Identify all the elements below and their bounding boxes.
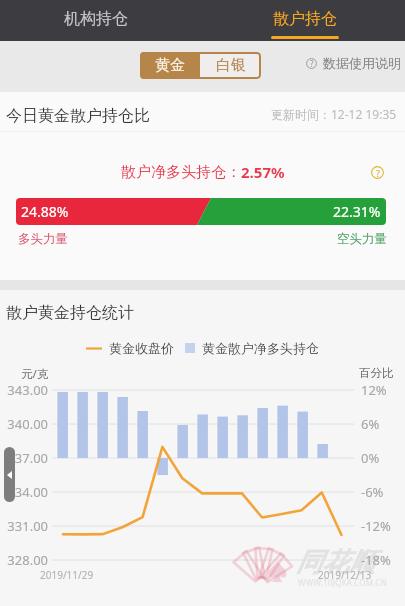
staticText: 更新时间：12-12 19:35	[271, 106, 397, 122]
staticText: 黄金收盘价	[109, 340, 174, 356]
staticText: -6%	[361, 483, 384, 501]
staticText: 6%	[361, 415, 380, 433]
staticText: 元/克	[21, 366, 49, 382]
button[interactable]: 说明	[371, 166, 384, 179]
staticText: 343.00	[0, 381, 48, 399]
staticText: 340.00	[0, 415, 48, 433]
staticText: ?	[310, 58, 314, 69]
staticText: 空头力量	[337, 231, 387, 247]
button[interactable]: 白银	[200, 52, 261, 79]
button[interactable]: 散户持仓	[239, 0, 370, 38]
staticText: WWW.10JQKA.COM.CN	[298, 577, 387, 588]
staticText: 散户持仓	[273, 9, 337, 29]
staticText: 2019/12/13	[318, 568, 372, 582]
staticText: 白银	[216, 56, 246, 75]
staticText: 机构持仓	[64, 9, 128, 29]
staticText: -12%	[361, 517, 391, 535]
staticText: 334.00	[0, 483, 48, 501]
staticText: 22.31%	[333, 202, 381, 221]
staticText: 24.88%	[21, 202, 69, 221]
staticText: 328.00	[0, 551, 48, 569]
staticText: 散户黄金持仓统计	[6, 303, 134, 323]
button[interactable]: 机构持仓	[31, 0, 161, 38]
button[interactable]: ?	[306, 55, 401, 71]
button[interactable]: 展开	[4, 447, 15, 502]
staticText: 同花顺	[296, 546, 375, 579]
staticText: 337.00	[0, 449, 48, 467]
staticText: 2019/11/29	[40, 568, 94, 582]
staticText: 数据使用说明	[323, 55, 401, 71]
staticText: 百分比	[359, 366, 394, 380]
staticText: 多头力量	[18, 231, 68, 247]
staticText: 0%	[361, 449, 380, 467]
staticText: ?	[376, 167, 380, 179]
staticText: 12%	[361, 381, 387, 399]
staticText: 今日黄金散户持仓比	[6, 106, 150, 126]
staticText: 黄金	[155, 56, 185, 75]
staticText: 331.00	[0, 517, 48, 535]
button[interactable]: 黄金	[140, 52, 200, 79]
staticText: -18%	[361, 551, 391, 569]
staticText: 黄金散户净多头持仓	[202, 340, 319, 356]
staticText: 2.57%	[241, 162, 285, 182]
staticText: 散户净多头持仓：	[121, 163, 241, 182]
